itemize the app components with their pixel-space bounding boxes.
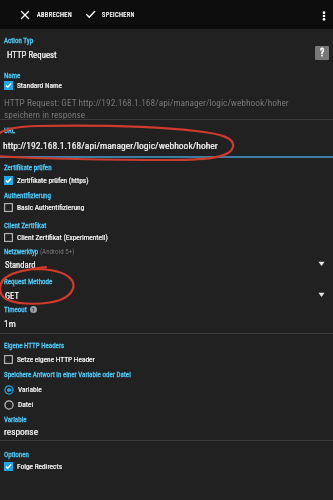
button[interactable]: HTTP Request	[0, 48, 333, 61]
staticText: Zertifikate prüfen (https)	[17, 176, 89, 185]
staticText: Folge Redirects	[17, 462, 63, 471]
staticText: 1m	[4, 318, 16, 329]
button[interactable]: Open dropdown	[316, 289, 326, 299]
button[interactable]: response	[0, 425, 333, 438]
staticText: Standard Name	[17, 81, 63, 90]
button[interactable]: 1m	[0, 317, 333, 330]
button[interactable]: Help	[30, 306, 37, 313]
staticText: Zertifikate prüfen	[4, 164, 52, 172]
button[interactable]: Standard	[0, 258, 333, 271]
button[interactable]: Zertifikate prüfen (https)	[0, 174, 333, 187]
staticText: Setze eigene HTTP Header	[17, 355, 95, 364]
button[interactable]: Variable	[0, 383, 333, 396]
staticText: Variable	[4, 416, 27, 424]
button[interactable]: Basic Authentifizierung	[0, 201, 333, 214]
button[interactable]: Help	[315, 46, 329, 60]
staticText: SPEICHERN	[102, 11, 135, 19]
staticText: http://192.168.1.168/api/manager/logic/w…	[3, 140, 218, 151]
staticText: Variable	[18, 385, 42, 394]
staticText: Client Zertifikat	[4, 222, 47, 230]
staticText: Eigene HTTP Headers	[4, 342, 65, 350]
staticText: ABBRECHEN	[37, 11, 73, 19]
button[interactable]: Folge Redirects	[0, 460, 333, 473]
staticText: HTTP Request: GET http://192.168.1.168/a…	[4, 97, 289, 120]
button[interactable]: ABBRECHEN	[0, 0, 78, 29]
staticText: Action Typ	[4, 37, 34, 45]
staticText: Request Methode	[4, 278, 53, 286]
button[interactable]: Datei	[0, 398, 333, 411]
staticText: Timeout	[4, 306, 27, 314]
staticText: Netzwerktyp (Android 5+)	[4, 248, 75, 256]
button[interactable]: GET	[0, 289, 333, 302]
button[interactable]: http://192.168.1.168/api/manager/logic/w…	[0, 139, 333, 152]
staticText: Basic Authentifizierung	[17, 203, 85, 212]
staticText: ?	[320, 47, 325, 59]
staticText: Optionen	[4, 451, 29, 459]
button[interactable]: Standard Name	[0, 79, 333, 92]
staticText: GET	[5, 291, 19, 301]
staticText: Name	[4, 72, 21, 80]
button[interactable]: SPEICHERN	[82, 0, 139, 29]
staticText: Client Zertifikat (Experimentell)	[17, 233, 108, 242]
button[interactable]: More options	[301, 0, 330, 29]
staticText: URL	[4, 127, 15, 135]
staticText: HTTP Request	[7, 50, 57, 60]
staticText: Speichere Antwort in einer Variable oder…	[4, 371, 131, 379]
staticText: Datei	[18, 400, 34, 409]
staticText: Standard	[5, 260, 36, 270]
button[interactable]: Open dropdown	[316, 258, 326, 268]
button[interactable]: Client Zertifikat (Experimentell)	[0, 231, 333, 244]
staticText: Authentifizierung	[4, 192, 51, 200]
button[interactable]: Setze eigene HTTP Header	[0, 353, 333, 366]
staticText: ?	[32, 307, 35, 313]
staticText: response	[4, 426, 39, 437]
